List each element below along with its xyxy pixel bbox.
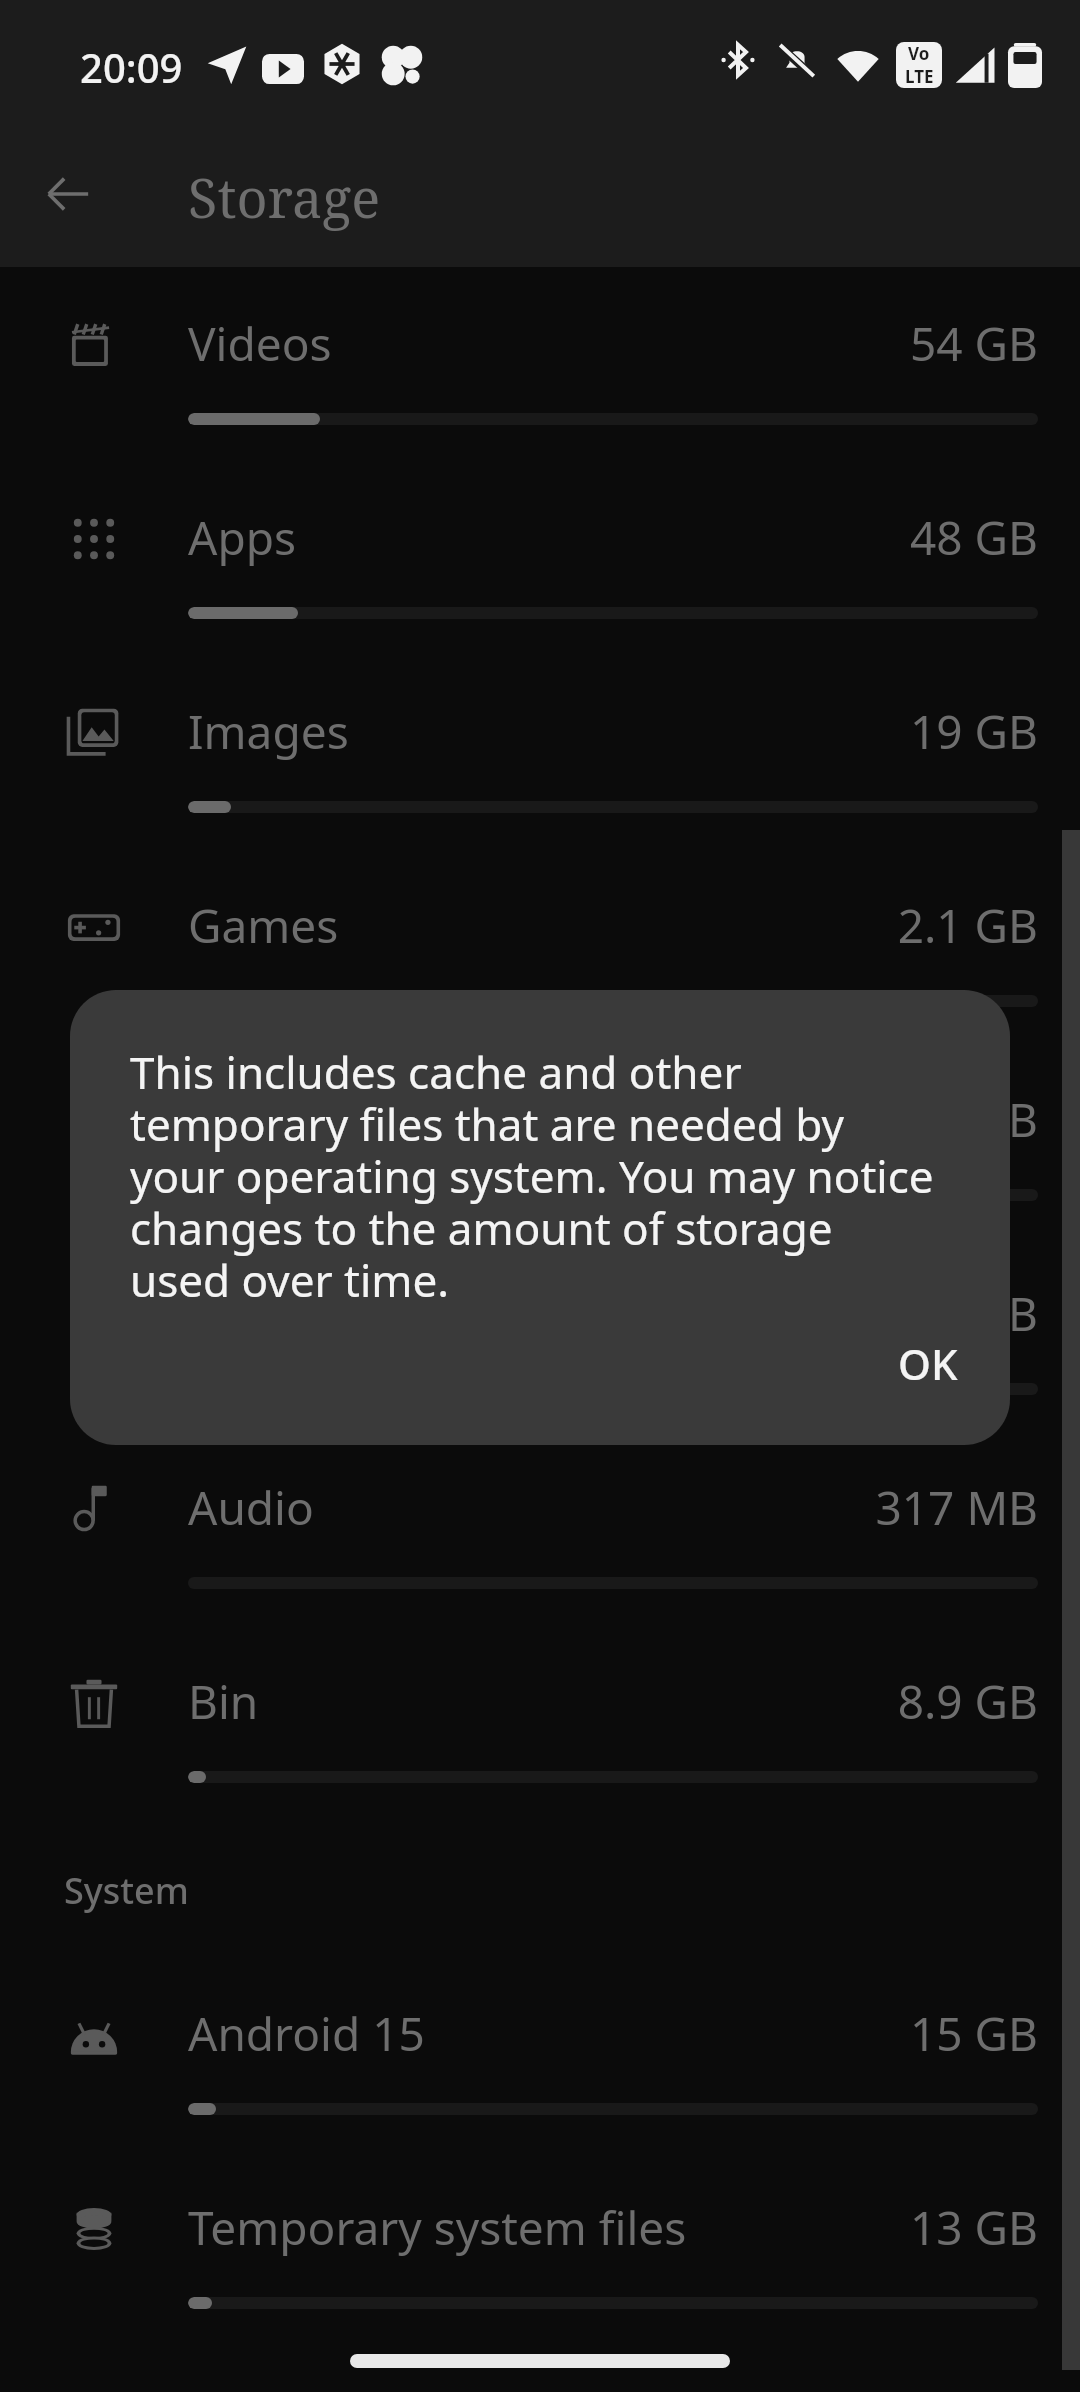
staticText: This includes cache and other temporary … <box>130 1042 940 1310</box>
staticText: 15 GB <box>600 2002 1038 2065</box>
staticText: 54 GB <box>600 312 1038 375</box>
staticText: Games <box>188 894 339 957</box>
staticText: Videos <box>188 312 332 375</box>
staticText: Images <box>188 700 349 763</box>
staticText: Temporary system files <box>188 2196 687 2259</box>
button[interactable]: Images <box>0 688 1080 882</box>
staticText: 8.9 GB <box>600 1670 1038 1733</box>
staticText: LTE <box>905 65 934 88</box>
button[interactable]: Documents <box>0 1076 1080 1270</box>
staticText: Other <box>188 1282 314 1345</box>
staticText: Vo <box>908 42 930 65</box>
staticText: 2.1 GB <box>600 894 1038 957</box>
button[interactable]: Back <box>26 152 110 236</box>
staticText: 48 GB <box>600 506 1038 569</box>
button[interactable]: Videos <box>0 300 1080 494</box>
button[interactable]: OK <box>870 1320 986 1406</box>
staticText: Documents <box>188 1088 436 1151</box>
button[interactable]: Games <box>0 882 1080 1076</box>
button[interactable]: Apps <box>0 494 1080 688</box>
staticText: 317 MB <box>600 1476 1038 1539</box>
staticText: 1.7 GB <box>600 1088 1038 1151</box>
staticText: System <box>64 1866 189 1915</box>
staticText: Bin <box>188 1670 259 1733</box>
button[interactable]: Android 15 <box>0 1990 1080 2184</box>
button[interactable]: Audio <box>0 1464 1080 1658</box>
staticText: 20:09 <box>80 40 183 94</box>
staticText: OK <box>898 1335 958 1392</box>
button[interactable]: Bin <box>0 1658 1080 1852</box>
button[interactable]: Temporary system files <box>0 2184 1080 2378</box>
staticText: 1.2 GB <box>600 1282 1038 1345</box>
button[interactable]: Other <box>0 1270 1080 1464</box>
staticText: Audio <box>188 1476 314 1539</box>
staticText: 19 GB <box>600 700 1038 763</box>
staticText: Storage <box>188 160 381 234</box>
staticText: Apps <box>188 506 297 569</box>
staticText: 13 GB <box>600 2196 1038 2259</box>
staticText: Android 15 <box>188 2002 425 2065</box>
